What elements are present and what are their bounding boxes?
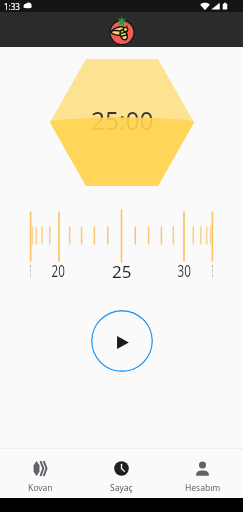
- staticText: 25:00: [91, 104, 154, 137]
- button[interactable]: Hesabım: [162, 449, 243, 498]
- staticText: 35: [212, 260, 213, 282]
- staticText: 15: [30, 260, 31, 282]
- staticText: Kovan: [28, 482, 53, 494]
- staticText: Hesabım: [185, 482, 221, 494]
- staticText: 1:33: [4, 1, 20, 12]
- button[interactable]: Start timer: [91, 310, 153, 372]
- button[interactable]: App logo: [109, 17, 135, 43]
- staticText: 25: [112, 260, 132, 283]
- button[interactable]: Sayaç: [81, 449, 162, 498]
- staticText: 30: [178, 260, 191, 282]
- button[interactable]: Kovan: [0, 449, 81, 498]
- staticText: 20: [52, 260, 65, 282]
- staticText: Sayaç: [110, 482, 133, 494]
